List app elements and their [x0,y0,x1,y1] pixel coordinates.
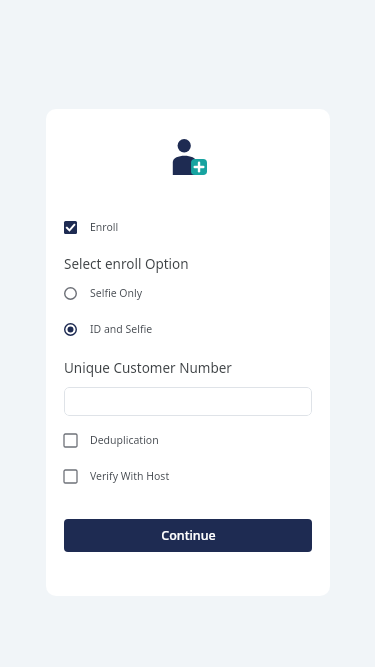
button[interactable]: Deduplication [64,433,312,447]
button[interactable]: Selfie Only [64,286,312,300]
staticText: Verify With Host [90,469,170,483]
staticText: Deduplication [90,433,159,447]
button[interactable]: Continue [64,519,312,552]
staticText: Enroll [90,220,119,234]
staticText: Selfie Only [90,286,143,300]
staticText: Continue [161,527,216,544]
button[interactable]: ID and Selfie [64,322,312,336]
staticText: Unique Customer Number [64,359,232,377]
button[interactable]: Enroll [64,220,312,234]
staticText: Select enroll Option [64,255,189,273]
button[interactable] [64,387,312,416]
staticText: ID and Selfie [90,322,153,336]
button[interactable]: Verify With Host [64,469,312,483]
other: Enroll user [169,138,207,175]
